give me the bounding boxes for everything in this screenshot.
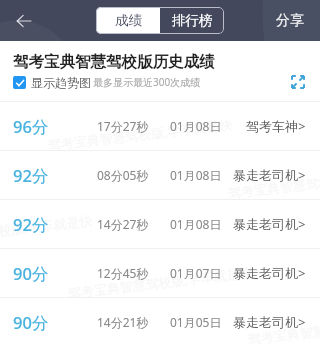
staticText: 14分27秒 bbox=[97, 216, 170, 232]
staticText: 01月07日 bbox=[170, 265, 222, 281]
staticText: 驾考宝典智慧驾校版,学车就是快 bbox=[47, 115, 234, 154]
staticText: 08分05秒 bbox=[97, 167, 170, 183]
staticText: 暴走老司机> bbox=[233, 264, 306, 282]
staticText: 最多显示最近300次成绩 bbox=[93, 75, 201, 89]
staticText: 驾考宝典智慧驾校版,学车就是快 bbox=[227, 163, 320, 202]
staticText: 01月08日 bbox=[170, 216, 222, 232]
button[interactable]: 96分 bbox=[0, 102, 320, 150]
staticText: 暴走老司机> bbox=[233, 166, 306, 184]
staticText: 12分45秒 bbox=[97, 265, 170, 281]
staticText: 驾考车神> bbox=[246, 117, 306, 135]
button[interactable]: 92分 bbox=[0, 200, 320, 248]
button[interactable]: 92分 bbox=[0, 151, 320, 199]
button[interactable]: 排行榜 bbox=[160, 7, 224, 34]
staticText: 90分 bbox=[13, 311, 97, 334]
staticText: 驾考宝典智慧驾校版,学车就是快 bbox=[0, 211, 94, 250]
button[interactable]: 90分 bbox=[0, 298, 320, 346]
button[interactable]: 显示趋势图 bbox=[13, 75, 91, 90]
staticText: 14分21秒 bbox=[97, 314, 170, 330]
staticText: 排行榜 bbox=[172, 12, 213, 29]
staticText: 01月08日 bbox=[170, 118, 222, 134]
staticText: 显示趋势图 bbox=[31, 75, 91, 90]
button[interactable]: 90分 bbox=[0, 249, 320, 297]
staticText: 17分27秒 bbox=[97, 118, 170, 134]
staticText: 90分 bbox=[13, 262, 97, 285]
staticText: 01月05日 bbox=[170, 314, 222, 330]
staticText: 92分 bbox=[13, 164, 97, 187]
staticText: 92分 bbox=[13, 213, 97, 236]
button[interactable]: 成绩 bbox=[96, 7, 160, 34]
button[interactable]: 分享 bbox=[274, 6, 306, 36]
staticText: 成绩 bbox=[115, 12, 142, 29]
staticText: 96分 bbox=[13, 115, 97, 138]
staticText: 驾考宝典智慧驾校版,学车就是快 bbox=[67, 263, 254, 302]
button[interactable]: Fullscreen bbox=[290, 74, 306, 90]
staticText: 分享 bbox=[276, 12, 304, 30]
staticText: 驾考宝典智慧驾校版,学车就是快 bbox=[247, 309, 320, 346]
staticText: 01月08日 bbox=[170, 167, 222, 183]
staticText: 暴走老司机> bbox=[233, 313, 306, 331]
staticText: 暴走老司机> bbox=[233, 215, 306, 233]
staticText: 驾考宝典智慧驾校版历史成绩 bbox=[13, 52, 215, 72]
button[interactable]: Back bbox=[10, 7, 38, 35]
